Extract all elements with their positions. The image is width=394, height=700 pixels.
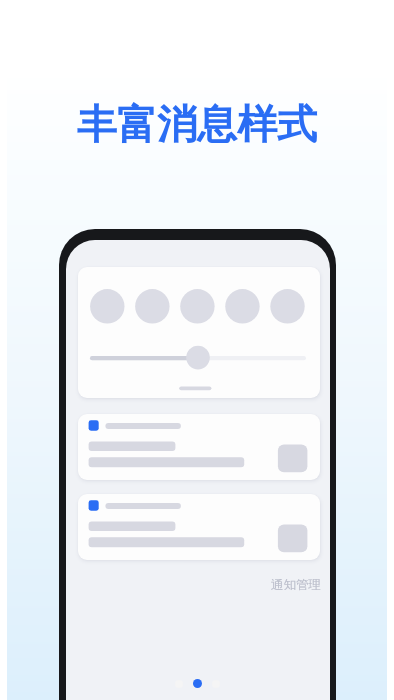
button[interactable]: Page 2, current page: [193, 679, 202, 688]
staticText: 丰富消息样式: [0, 99, 394, 149]
button[interactable]: Notification: [78, 494, 320, 560]
button[interactable]: 通知管理: [271, 577, 321, 593]
button[interactable]: Quick settings panel: [78, 267, 320, 398]
button[interactable]: Notification: [78, 414, 320, 480]
